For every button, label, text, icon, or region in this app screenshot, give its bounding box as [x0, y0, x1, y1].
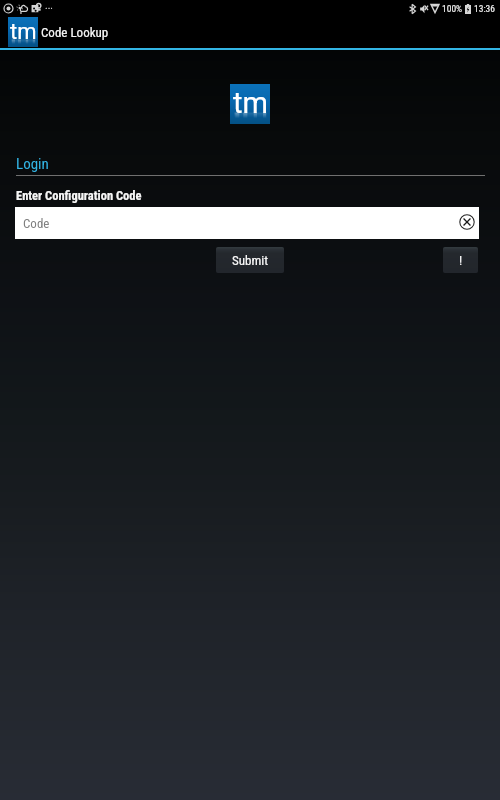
staticText: Login [16, 155, 49, 173]
staticText: ! [459, 253, 463, 268]
staticText: Code [23, 216, 50, 231]
staticText: Enter Configuration Code [16, 188, 142, 203]
button[interactable]: Show information [443, 247, 478, 273]
staticText: tm [10, 19, 37, 45]
staticText: tm [233, 86, 268, 120]
button[interactable]: Clear text [457, 212, 477, 232]
staticText: 100% [442, 3, 463, 14]
staticText: Submit [232, 253, 269, 268]
staticText: Code Lookup [41, 25, 109, 40]
button[interactable]: Submit [216, 247, 284, 273]
button[interactable]: Code [15, 207, 479, 239]
staticText: ... [45, 0, 53, 12]
staticText: 13:36 [474, 3, 495, 14]
